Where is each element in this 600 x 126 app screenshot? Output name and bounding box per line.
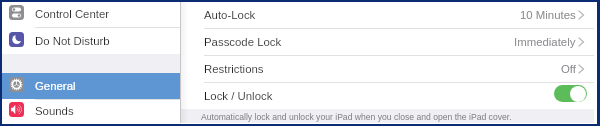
- staticText: Off: [561, 63, 576, 76]
- staticText: 10 Minutes: [520, 9, 576, 22]
- staticText: Control Center: [35, 8, 110, 21]
- button[interactable]: Sounds: [2, 100, 180, 123]
- button[interactable]: Auto-Lock: [181, 2, 594, 28]
- staticText: General: [35, 80, 76, 93]
- button[interactable]: Do Not Disturb: [2, 28, 180, 54]
- button[interactable]: Control Center: [2, 2, 180, 27]
- button[interactable]: General: [2, 73, 180, 99]
- staticText: Automatically lock and unlock your iPad …: [201, 112, 512, 122]
- button[interactable]: Lock / Unlock toggle, on: [554, 85, 587, 102]
- staticText: Sounds: [35, 105, 74, 118]
- other: Open Passcode Lock: [578, 37, 584, 47]
- other: Open Auto-Lock: [578, 10, 584, 20]
- staticText: Passcode Lock: [204, 36, 282, 49]
- button[interactable]: Restrictions: [181, 56, 594, 82]
- staticText: Auto-Lock: [204, 9, 256, 22]
- staticText: Lock / Unlock: [204, 90, 273, 103]
- staticText: Immediately: [514, 36, 576, 49]
- staticText: Restrictions: [204, 63, 264, 76]
- button[interactable]: Lock / Unlock: [181, 83, 594, 109]
- staticText: Do Not Disturb: [35, 35, 110, 48]
- button[interactable]: Passcode Lock: [181, 29, 594, 55]
- other: Open Restrictions: [578, 64, 584, 74]
